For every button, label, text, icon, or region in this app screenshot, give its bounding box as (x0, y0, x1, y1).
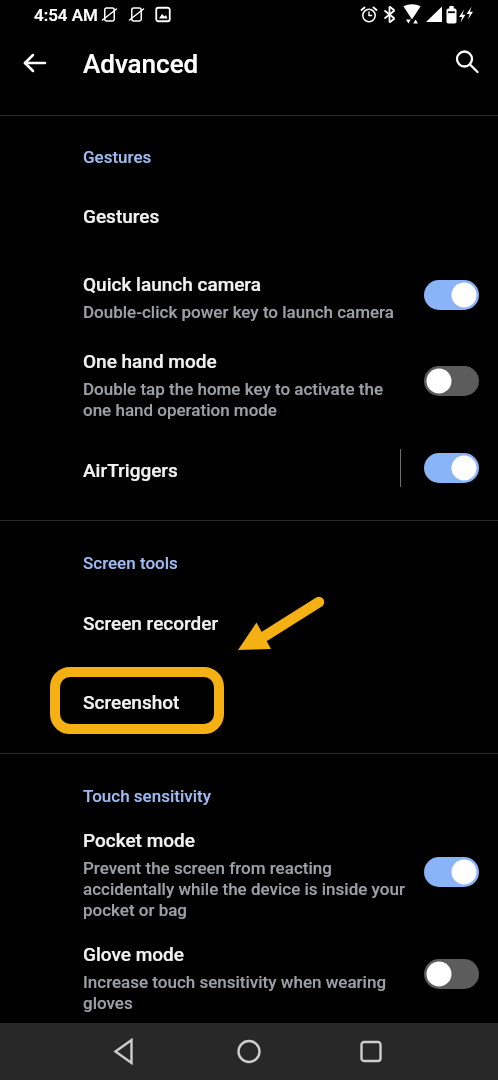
staticText: pocket or bag (83, 900, 188, 920)
button[interactable] (0, 256, 498, 333)
button[interactable] (0, 333, 498, 431)
button[interactable]: Recent apps (341, 1023, 401, 1080)
button[interactable]: Back (95, 1023, 155, 1080)
staticText: 4:54 AM (34, 5, 98, 25)
button[interactable] (0, 595, 498, 651)
button[interactable]: Switch, off (424, 959, 479, 989)
button[interactable] (0, 812, 498, 931)
staticText: Increase touch sensitivity when wearing (83, 972, 387, 992)
button[interactable] (0, 926, 498, 1024)
button[interactable] (0, 133, 498, 181)
staticText: AirTriggers (83, 459, 178, 481)
button[interactable] (0, 442, 498, 498)
staticText: Quick launch camera (83, 273, 261, 295)
button[interactable]: Switch, off (424, 366, 479, 396)
button[interactable] (0, 674, 498, 730)
button[interactable]: Search (441, 39, 489, 87)
staticText: accidentally while the device is inside … (83, 879, 405, 899)
staticText: Screen recorder (83, 612, 219, 634)
staticText: Double-click power key to launch camera (83, 302, 394, 322)
staticText: gloves (83, 993, 133, 1013)
staticText: Pocket mode (83, 829, 195, 851)
button[interactable] (0, 188, 498, 244)
button[interactable]: Navigate up (11, 39, 59, 87)
staticText: one hand operation mode (83, 400, 277, 420)
staticText: Double tap the home key to activate the (83, 379, 383, 399)
button[interactable]: Switch, on (424, 453, 479, 483)
button[interactable]: Switch, on (424, 280, 479, 310)
button[interactable]: Switch, on (424, 857, 479, 887)
staticText: Gestures (83, 147, 152, 167)
button[interactable] (0, 539, 498, 587)
button[interactable] (0, 772, 498, 820)
button[interactable]: Home (219, 1023, 279, 1080)
staticText: Touch sensitivity (83, 786, 211, 806)
staticText: One hand mode (83, 350, 217, 372)
staticText: Glove mode (83, 943, 184, 965)
staticText: Screen tools (83, 553, 178, 573)
staticText: Advanced (83, 49, 199, 79)
staticText: Screenshot (83, 691, 180, 713)
staticText: Prevent the screen from reacting (83, 858, 332, 878)
staticText: Gestures (83, 205, 160, 227)
